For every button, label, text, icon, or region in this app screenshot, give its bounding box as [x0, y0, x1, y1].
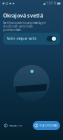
staticText: Nočné okrajové svetlá: [6, 37, 35, 40]
staticText: Okrajová svetlá: [3, 12, 43, 19]
staticText: Nastavenia: [9, 124, 22, 127]
staticText: Svetlá sa rozsvietia automaticky pri zho…: [3, 21, 46, 32]
button[interactable]: Nočné okrajové svetlá: [3, 33, 60, 45]
button[interactable]: Nastavenia: [3, 121, 23, 130]
staticText: Viac informácií: [39, 124, 58, 127]
staticText: 100 %: [47, 2, 56, 5]
button[interactable]: Viac informácií: [33, 121, 60, 130]
